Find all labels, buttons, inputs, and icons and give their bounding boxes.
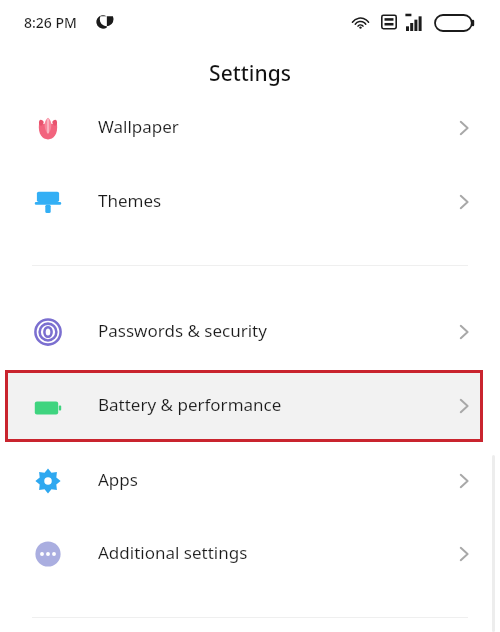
staticText: Wallpaper: [98, 115, 179, 138]
button[interactable]: Wallpaper: [0, 92, 500, 164]
staticText: Additional settings: [98, 541, 248, 564]
button[interactable]: Passwords & security: [0, 296, 500, 368]
button[interactable]: Additional settings: [0, 518, 500, 590]
button[interactable]: Themes: [0, 166, 500, 238]
button[interactable]: Apps: [0, 445, 500, 517]
staticText: Settings: [0, 59, 500, 88]
staticText: Themes: [98, 189, 162, 212]
staticText: Apps: [98, 468, 138, 491]
staticText: Battery & performance: [98, 393, 282, 416]
staticText: 8:26 PM: [24, 13, 77, 32]
staticText: Passwords & security: [98, 319, 267, 342]
button[interactable]: Battery & performance: [5, 370, 483, 442]
